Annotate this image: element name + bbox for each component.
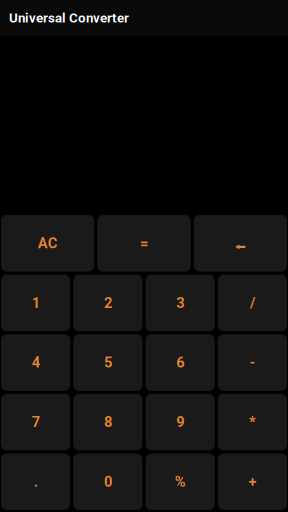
- button[interactable]: AC: [1, 215, 94, 272]
- button[interactable]: 5: [73, 334, 142, 391]
- button[interactable]: .: [1, 453, 70, 510]
- button[interactable]: -: [218, 334, 287, 391]
- staticText: .: [34, 473, 38, 490]
- staticText: =: [140, 235, 148, 252]
- button[interactable]: /: [218, 275, 287, 331]
- staticText: 6: [176, 354, 184, 371]
- button[interactable]: 8: [73, 394, 142, 450]
- staticText: 4: [32, 354, 40, 371]
- staticText: 8: [104, 413, 112, 431]
- button[interactable]: *: [218, 394, 287, 450]
- button[interactable]: 7: [1, 394, 70, 450]
- button[interactable]: 1: [1, 275, 70, 331]
- staticText: 5: [104, 354, 112, 371]
- staticText: /: [250, 294, 255, 311]
- button[interactable]: =: [97, 215, 191, 272]
- staticText: AC: [38, 235, 58, 252]
- button[interactable]: 6: [145, 334, 215, 391]
- button[interactable]: Backspace: [194, 215, 287, 272]
- staticText: 0: [104, 473, 112, 490]
- button[interactable]: 3: [145, 275, 215, 331]
- button[interactable]: %: [145, 453, 215, 510]
- button[interactable]: 4: [1, 334, 70, 391]
- button[interactable]: 0: [73, 453, 142, 510]
- staticText: 1: [32, 294, 40, 311]
- button[interactable]: +: [218, 453, 287, 510]
- staticText: %: [175, 473, 186, 490]
- button[interactable]: 2: [73, 275, 142, 331]
- staticText: Universal Converter: [9, 10, 129, 26]
- staticText: *: [249, 413, 256, 431]
- staticText: 7: [32, 413, 40, 431]
- staticText: 9: [176, 413, 184, 431]
- staticText: 3: [176, 294, 184, 311]
- button[interactable]: 9: [145, 394, 215, 450]
- staticText: +: [248, 473, 256, 490]
- staticText: -: [249, 354, 255, 371]
- staticText: 2: [104, 294, 112, 311]
